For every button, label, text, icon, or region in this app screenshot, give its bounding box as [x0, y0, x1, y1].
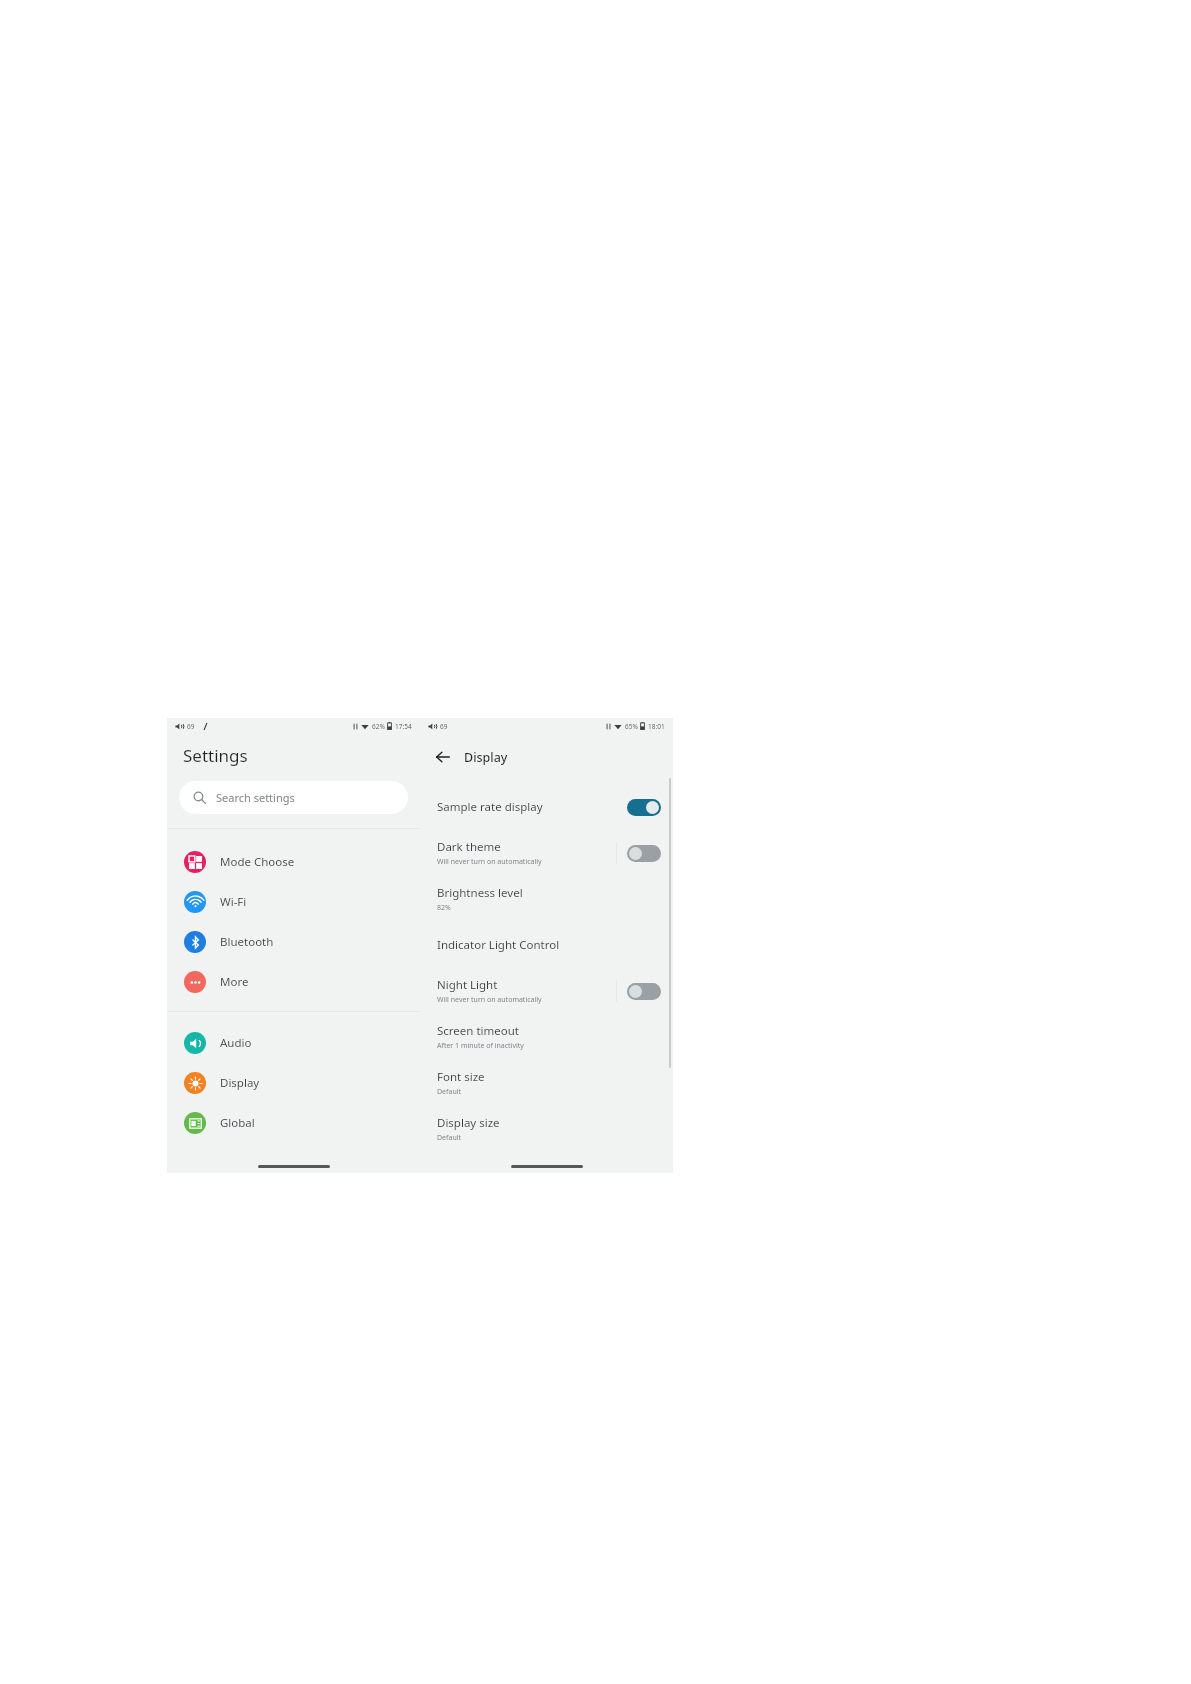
staticText: Bluetooth: [220, 934, 274, 950]
button[interactable]: Back: [430, 744, 456, 770]
staticText: Display size: [437, 1115, 500, 1131]
button[interactable]: Global: [167, 1103, 420, 1143]
staticText: Default: [437, 1133, 462, 1143]
staticText: Default: [437, 1087, 462, 1097]
staticText: 69: [187, 722, 195, 731]
staticText: 18:01: [648, 722, 665, 731]
staticText: Screen timeout: [437, 1023, 519, 1039]
staticText: Brightness level: [437, 885, 523, 901]
staticText: Display: [220, 1075, 260, 1091]
staticText: Settings: [183, 744, 248, 767]
button[interactable]: More: [167, 962, 420, 1002]
staticText: Display: [464, 749, 508, 766]
button[interactable]: Display size: [420, 1106, 673, 1152]
button[interactable]: Off: [627, 845, 661, 862]
button[interactable]: Brightness level: [420, 876, 673, 922]
staticText: Audio: [220, 1035, 252, 1051]
button[interactable]: Audio: [167, 1023, 420, 1063]
button[interactable]: Font size: [420, 1060, 673, 1106]
button[interactable]: Dark theme: [420, 830, 673, 876]
staticText: Mode Choose: [220, 854, 295, 870]
staticText: Sample rate display: [437, 799, 543, 815]
button[interactable]: Wi-Fi: [167, 882, 420, 922]
button[interactable]: Bluetooth: [167, 922, 420, 962]
button[interactable]: Search settings: [179, 781, 408, 814]
staticText: Will never turn on automatically: [437, 995, 542, 1005]
button[interactable]: Mode Choose: [167, 842, 420, 882]
staticText: 17:54: [395, 722, 412, 731]
button[interactable]: Display: [167, 1063, 420, 1103]
staticText: 82%: [437, 903, 451, 913]
button[interactable]: Night Light: [420, 968, 673, 1014]
button[interactable]: Off: [627, 983, 661, 1000]
staticText: Search settings: [216, 790, 295, 805]
staticText: Wi-Fi: [220, 894, 247, 910]
staticText: 62%: [372, 722, 385, 731]
staticText: Font size: [437, 1069, 485, 1085]
staticText: Will never turn on automatically: [437, 857, 542, 867]
staticText: 65%: [625, 722, 638, 731]
button[interactable]: Screen timeout: [420, 1014, 673, 1060]
button[interactable]: Sample rate display: [420, 784, 673, 830]
button[interactable]: On: [627, 799, 661, 816]
button[interactable]: Indicator Light Control: [420, 922, 673, 968]
staticText: 69: [440, 722, 448, 731]
staticText: Dark theme: [437, 839, 501, 855]
staticText: Global: [220, 1115, 255, 1131]
staticText: After 1 minute of inactivity: [437, 1041, 524, 1051]
staticText: Night Light: [437, 977, 498, 993]
staticText: Indicator Light Control: [437, 937, 560, 953]
staticText: More: [220, 974, 249, 990]
